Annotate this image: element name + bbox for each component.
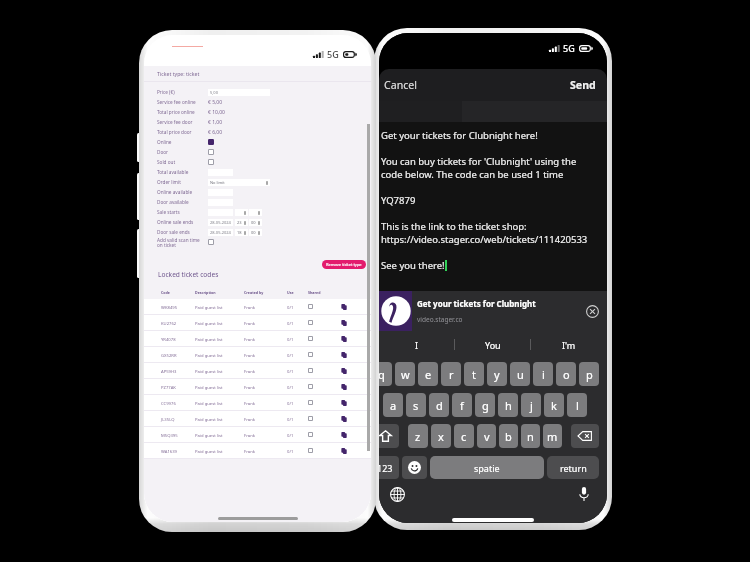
button[interactable]: GX52RR: [144, 347, 371, 363]
button[interactable]: You: [455, 331, 531, 358]
button[interactable]: Copy code: [340, 367, 348, 375]
button[interactable]: Numbers: [379, 456, 399, 479]
button[interactable]: k: [544, 393, 564, 417]
button[interactable]: I: [379, 331, 455, 358]
button[interactable]: WA1639: [144, 443, 371, 459]
button[interactable]: r: [441, 362, 461, 386]
button[interactable]: Copy code: [340, 319, 348, 327]
button[interactable]: Copy code: [340, 431, 348, 439]
button[interactable]: 00: [249, 229, 262, 236]
button[interactable]: Copy code: [340, 335, 348, 343]
button[interactable]: y: [487, 362, 507, 386]
button[interactable]: c: [454, 424, 474, 448]
button[interactable]: b: [499, 424, 518, 448]
button[interactable]: h: [498, 393, 518, 417]
button[interactable]: 28-05-2024: [208, 219, 233, 226]
staticText: a: [390, 398, 397, 413]
button[interactable]: 23: [235, 219, 248, 226]
button[interactable]: AP59H3: [144, 363, 371, 379]
button[interactable]: Shift: [379, 424, 399, 448]
button[interactable]: i: [533, 362, 553, 386]
staticText: Use: [287, 290, 294, 295]
button[interactable]: o: [556, 362, 576, 386]
button[interactable]: a: [383, 393, 403, 417]
button[interactable]: KU2762: [144, 315, 371, 331]
other: Copy code: [341, 368, 347, 374]
button[interactable]: 00: [249, 219, 262, 226]
button[interactable]: Send: [561, 73, 607, 97]
button[interactable]: No limit: [208, 179, 270, 186]
staticText: 28-05-2024: [210, 220, 231, 225]
button[interactable]: Emoji: [402, 456, 427, 479]
button[interactable]: p: [579, 362, 599, 386]
button[interactable]: 18: [235, 229, 248, 236]
button[interactable]: u: [510, 362, 530, 386]
staticText: € 10,00: [208, 109, 225, 116]
button[interactable]: w: [395, 362, 415, 386]
staticText: YR4078: [161, 337, 176, 343]
button[interactable]: Dictate: [573, 483, 595, 505]
button[interactable]: Copy code: [340, 303, 348, 311]
button[interactable]: [235, 209, 248, 216]
button[interactable]: Get your tickets for Clubnight: [379, 291, 607, 331]
button[interactable]: spatie: [430, 456, 544, 479]
staticText: f: [460, 398, 464, 413]
button[interactable]: return: [547, 456, 599, 479]
button[interactable]: Copy code: [340, 351, 348, 359]
button[interactable]: WK8495: [144, 299, 371, 315]
button[interactable]: Remove link preview: [580, 299, 604, 323]
button[interactable]: g: [475, 393, 495, 417]
button[interactable]: t: [464, 362, 484, 386]
button[interactable]: v: [477, 424, 496, 448]
button[interactable]: z: [408, 424, 428, 448]
button[interactable]: s: [406, 393, 426, 417]
button[interactable]: I'm: [531, 331, 607, 358]
button[interactable]: CC9976: [144, 395, 371, 411]
button[interactable]: Copy code: [340, 447, 348, 455]
button[interactable]: 5,00: [208, 89, 270, 96]
button[interactable]: n: [521, 424, 540, 448]
button[interactable]: j: [521, 393, 541, 417]
staticText: e: [425, 367, 432, 382]
button[interactable]: l: [567, 393, 587, 417]
button[interactable]: Remove ticket type: [322, 260, 366, 269]
button[interactable]: PZ77AK: [144, 379, 371, 395]
button[interactable]: f: [452, 393, 472, 417]
button[interactable]: Change keyboard: [386, 483, 408, 505]
button[interactable]: M5Q395: [144, 427, 371, 443]
button[interactable]: [249, 209, 262, 216]
button[interactable]: Copy code: [340, 399, 348, 407]
button[interactable]: x: [431, 424, 451, 448]
staticText: YQ7879: [381, 194, 416, 207]
button[interactable]: q: [379, 362, 392, 386]
button[interactable]: d: [429, 393, 449, 417]
button[interactable]: YR4078: [144, 331, 371, 347]
button[interactable]: JL35LQ: [144, 411, 371, 427]
button[interactable]: Cancel: [379, 73, 425, 97]
button[interactable]: Copy code: [340, 415, 348, 423]
staticText: Total price door: [157, 129, 192, 135]
button[interactable]: 28-05-2024: [208, 229, 233, 236]
button[interactable]: e: [418, 362, 438, 386]
button[interactable]: Backspace: [571, 424, 599, 448]
button[interactable]: m: [543, 424, 562, 448]
button[interactable]: [208, 139, 214, 145]
button[interactable]: Copy code: [340, 383, 348, 391]
